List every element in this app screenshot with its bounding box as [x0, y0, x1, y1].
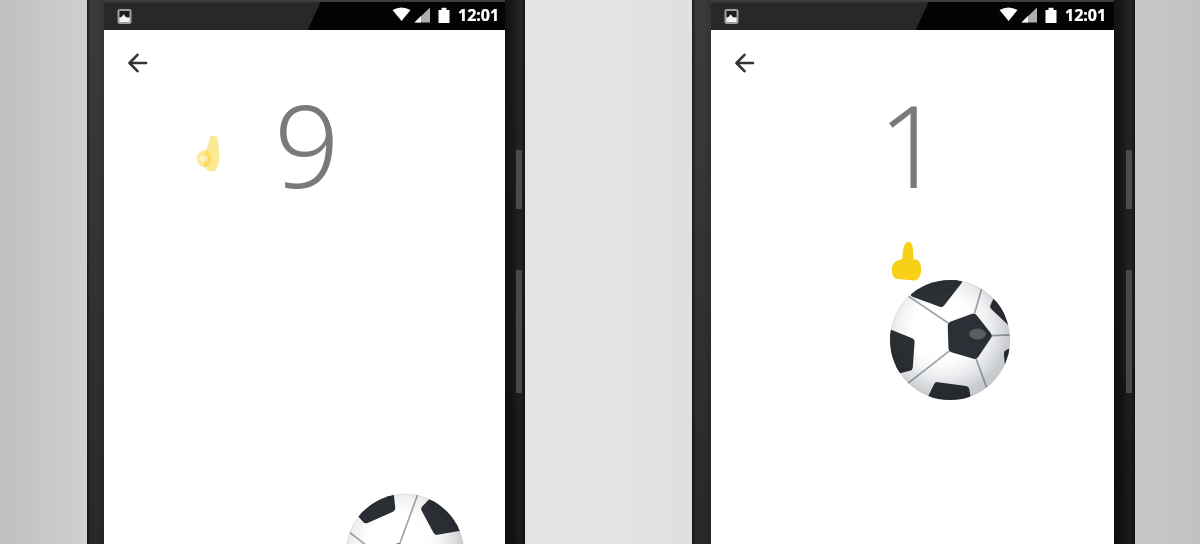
staticText: 1 [878, 65, 944, 222]
button[interactable]: 1 [878, 65, 944, 222]
button[interactable]: 9 [274, 65, 340, 222]
staticText: 12:01 [458, 4, 500, 26]
staticText: 9 [274, 65, 340, 222]
button[interactable]: Back [113, 38, 159, 84]
button[interactable]: Tap to score [711, 30, 1114, 544]
staticText: 12:01 [1065, 4, 1107, 26]
button[interactable]: Back [720, 38, 766, 84]
button[interactable]: Tap to score [104, 30, 505, 544]
